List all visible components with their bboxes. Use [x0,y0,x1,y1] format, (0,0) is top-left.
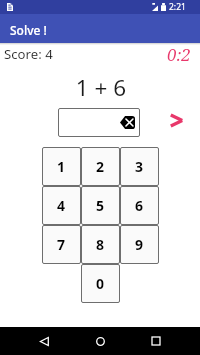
button[interactable]: 0 [81,264,120,303]
staticText: 0 [96,274,105,293]
button[interactable]: Home [88,329,112,353]
staticText: 4 [57,196,66,215]
staticText: 9 [135,235,144,254]
staticText: Score: 4 [4,45,53,63]
button[interactable]: 6 [120,186,159,225]
button[interactable]: 3 [120,147,159,186]
staticText: 7 [57,235,66,254]
button[interactable]: 1 [42,147,81,186]
staticText: Solve ! [10,22,47,38]
button[interactable]: Submit answer [164,108,188,132]
staticText: 2 [96,157,105,176]
staticText: 1 [57,157,66,176]
button[interactable]: 5 [81,186,120,225]
staticText: 3 [135,157,144,176]
button[interactable]: Recent apps [144,329,168,353]
staticText: 2:21 [169,1,186,13]
staticText: 1 + 6 [1,72,200,103]
button[interactable]: 9 [120,225,159,264]
button[interactable]: Backspace [58,108,140,137]
button[interactable]: Back [32,329,56,353]
button[interactable]: 4 [42,186,81,225]
button[interactable]: Backspace [120,116,135,129]
staticText: 6 [135,196,144,215]
staticText: 0:2 [167,43,191,66]
button[interactable]: 7 [42,225,81,264]
button[interactable]: 8 [81,225,120,264]
staticText: 8 [96,235,105,254]
staticText: 5 [96,196,105,215]
button[interactable]: 2 [81,147,120,186]
